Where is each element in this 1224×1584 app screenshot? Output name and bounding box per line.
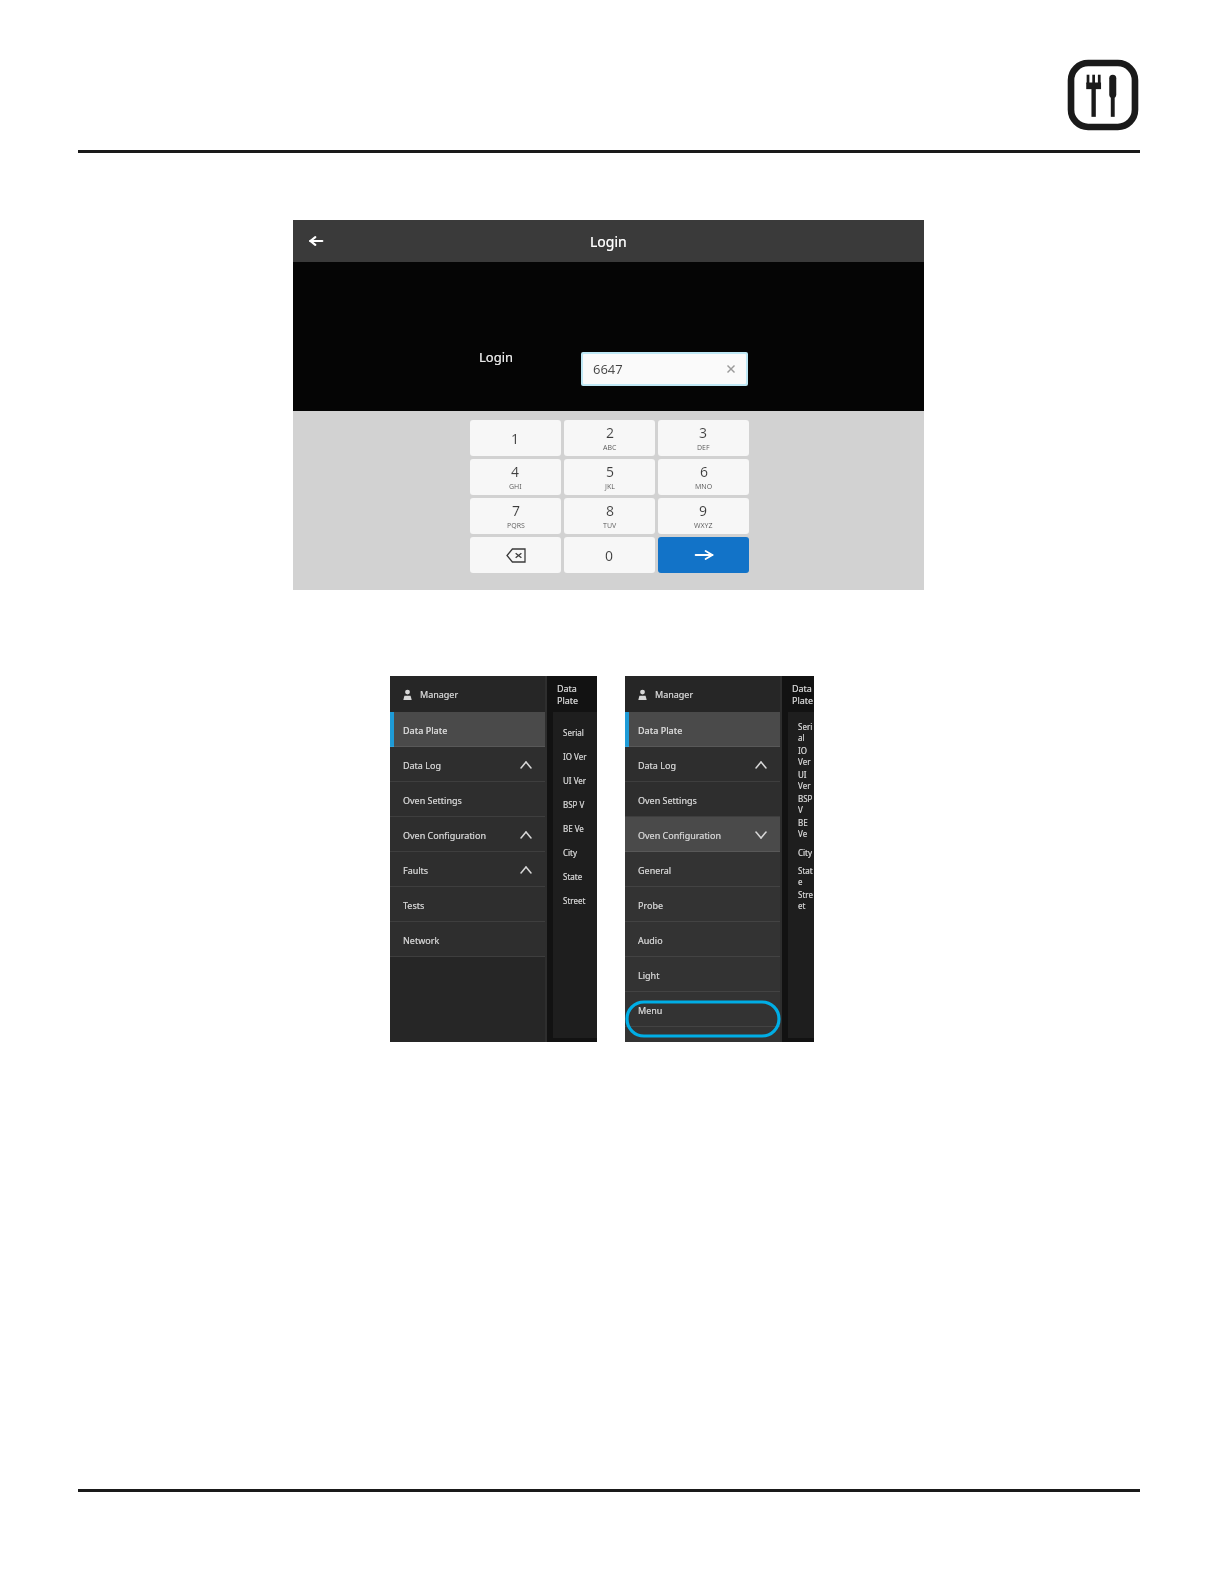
button[interactable]: 0 — [564, 537, 655, 573]
staticText: 3 — [699, 423, 708, 442]
button[interactable]: Data Plate — [625, 712, 780, 747]
button[interactable]: General — [625, 852, 780, 887]
staticText: Manager — [655, 688, 694, 700]
staticText: Serial — [563, 727, 584, 738]
staticText: City — [798, 847, 813, 858]
staticText: ABC — [603, 443, 617, 453]
button[interactable]: Back — [301, 226, 331, 256]
button[interactable]: 4 — [470, 459, 561, 495]
staticText: JKL — [605, 482, 615, 492]
staticText: Light — [638, 969, 660, 981]
staticText: TUV — [603, 521, 617, 531]
staticText: 7 — [512, 501, 521, 520]
staticText: Tests — [403, 899, 425, 911]
staticText: Data Plate — [557, 682, 597, 706]
button[interactable]: Tests — [390, 887, 545, 922]
button[interactable]: No Password — [581, 414, 643, 428]
staticText: BSP V — [563, 799, 585, 810]
staticText: BE Ve — [798, 817, 814, 839]
button[interactable]: 5 — [564, 459, 655, 495]
staticText: Probe — [638, 899, 664, 911]
button[interactable]: Data Plate — [390, 712, 545, 747]
staticText: BE Ve — [563, 823, 584, 834]
staticText: 8 — [606, 501, 615, 520]
staticText: DEF — [697, 443, 710, 453]
staticText: Data Plate — [403, 724, 448, 736]
button[interactable]: Oven Settings — [625, 782, 780, 817]
staticText: Data Log — [403, 759, 441, 771]
staticText: Faults — [403, 864, 429, 876]
staticText: Data Plate — [638, 724, 683, 736]
staticText: Oven Settings — [403, 794, 462, 806]
staticText: Login — [590, 232, 627, 251]
button[interactable]: Oven Settings — [390, 782, 545, 817]
staticText: UI Ver — [563, 775, 587, 786]
button[interactable]: Faults — [390, 852, 545, 887]
staticText: UI Ver — [798, 769, 814, 791]
staticText: Serial — [798, 721, 814, 743]
staticText: Network — [403, 934, 440, 946]
staticText: GHI — [509, 482, 522, 492]
staticText: IO Ver — [563, 751, 587, 762]
staticText: Audio — [638, 934, 663, 946]
button[interactable]: Data Log — [625, 747, 780, 782]
button[interactable]: 6647 — [583, 354, 746, 384]
staticText: Oven Configuration — [403, 829, 486, 841]
staticText: Oven Settings — [638, 794, 697, 806]
staticText: MNO — [695, 482, 713, 492]
button[interactable]: Light — [625, 957, 780, 992]
button[interactable]: Clear — [724, 362, 738, 376]
button[interactable]: 6 — [658, 459, 749, 495]
staticText: 4 — [511, 462, 520, 481]
staticText: Data Plate — [792, 682, 814, 706]
staticText: General — [638, 864, 672, 876]
button[interactable]: 9 — [658, 498, 749, 534]
staticText: State — [798, 865, 814, 887]
button[interactable]: Oven Configuration — [390, 817, 545, 852]
button[interactable]: 1 — [470, 420, 561, 456]
staticText: PQRS — [507, 521, 525, 531]
button[interactable]: Audio — [625, 922, 780, 957]
button[interactable]: Data Log — [390, 747, 545, 782]
staticText: Street — [798, 889, 814, 911]
staticText: 6647 — [593, 360, 623, 378]
staticText: City — [563, 847, 578, 858]
button[interactable]: 2 — [564, 420, 655, 456]
button[interactable]: Enter — [658, 537, 749, 573]
button[interactable]: Network — [390, 922, 545, 957]
staticText: BSP V — [798, 793, 814, 815]
button[interactable]: Menu — [625, 992, 780, 1027]
staticText: State — [563, 871, 583, 882]
staticText: 9 — [699, 501, 708, 520]
staticText: 0 — [605, 546, 614, 565]
staticText: Login — [479, 348, 514, 366]
staticText: Menu — [638, 1004, 663, 1016]
staticText: Street — [563, 895, 586, 906]
staticText: WXYZ — [694, 521, 713, 531]
button[interactable]: 7 — [470, 498, 561, 534]
staticText: 2 — [606, 423, 615, 442]
button[interactable]: 3 — [658, 420, 749, 456]
staticText: Manager — [420, 688, 459, 700]
staticText: Oven Configuration — [638, 829, 721, 841]
button[interactable]: Oven Configuration — [625, 817, 780, 852]
button[interactable]: 8 — [564, 498, 655, 534]
button[interactable]: Probe — [625, 887, 780, 922]
staticText: 6 — [700, 462, 709, 481]
staticText: 5 — [606, 462, 615, 481]
button[interactable]: Backspace — [470, 537, 561, 573]
staticText: Data Log — [638, 759, 676, 771]
staticText: IO Ver — [798, 745, 814, 767]
other: Food service logo — [1064, 56, 1142, 134]
staticText: 1 — [511, 429, 520, 448]
